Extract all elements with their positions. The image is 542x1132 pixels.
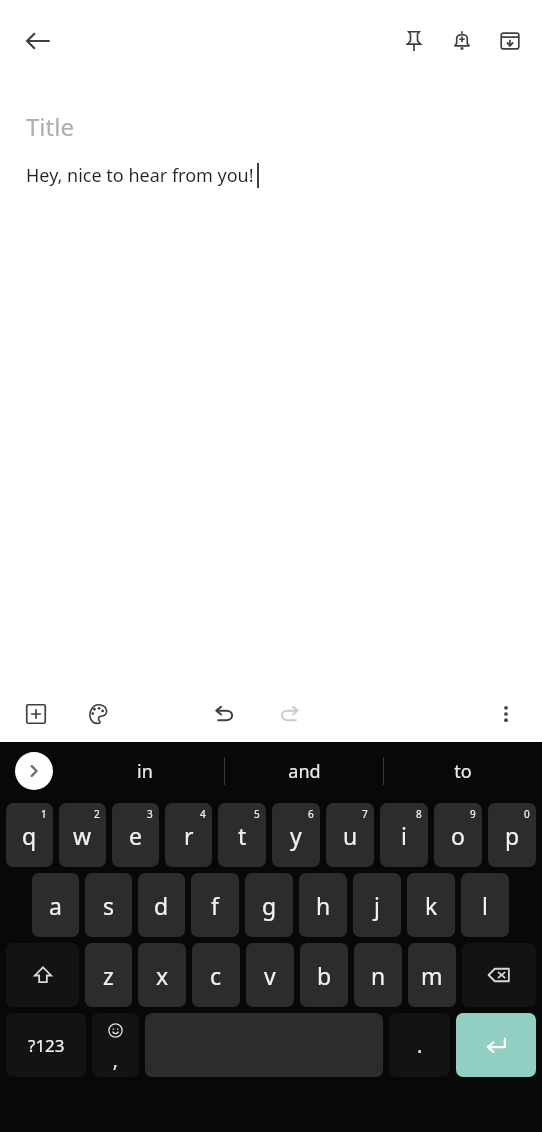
staticText: u [343, 820, 358, 851]
button[interactable]: Expand suggestions [15, 752, 53, 790]
button[interactable]: c [192, 943, 240, 1007]
staticText: 9 [470, 807, 476, 821]
button[interactable]: Period [389, 1013, 450, 1077]
staticText: y [290, 820, 302, 851]
button[interactable]: x [138, 943, 186, 1007]
button[interactable]: Add reminder [438, 17, 486, 65]
staticText: m [421, 960, 443, 991]
button[interactable]: w [59, 803, 106, 867]
staticText: 6 [308, 807, 314, 821]
staticText: in [137, 759, 153, 784]
staticText: c [210, 960, 222, 991]
button[interactable]: Back [12, 15, 64, 67]
button[interactable]: d [138, 873, 185, 937]
button[interactable]: Backspace [462, 943, 536, 1007]
staticText: 5 [254, 807, 260, 821]
staticText: t [238, 820, 247, 851]
button[interactable]: q [6, 803, 53, 867]
button[interactable]: n [354, 943, 402, 1007]
button[interactable]: g [245, 873, 293, 937]
staticText: 7 [362, 807, 368, 821]
staticText: . [417, 1032, 423, 1059]
staticText: r [184, 820, 194, 851]
staticText: s [103, 890, 115, 921]
staticText: 3 [147, 807, 153, 821]
button[interactable]: s [85, 873, 132, 937]
button[interactable]: o [434, 803, 482, 867]
button[interactable]: v [246, 943, 294, 1007]
staticText: x [156, 960, 169, 991]
button[interactable]: j [353, 873, 401, 937]
button[interactable]: Enter [456, 1013, 536, 1077]
staticText: ?123 [28, 1034, 65, 1057]
button[interactable]: y [272, 803, 320, 867]
staticText: w [73, 820, 92, 851]
staticText: e [129, 820, 142, 851]
button[interactable]: m [408, 943, 456, 1007]
button[interactable]: i [380, 803, 428, 867]
staticText: Hey, nice to hear from you! [26, 163, 254, 188]
button[interactable]: z [85, 943, 132, 1007]
staticText: to [454, 759, 472, 784]
button[interactable]: Pin [390, 17, 438, 65]
button[interactable]: b [300, 943, 348, 1007]
button[interactable]: to [384, 742, 542, 800]
button[interactable]: Change color [74, 690, 122, 738]
staticText: 2 [94, 807, 100, 821]
staticText: h [316, 890, 331, 921]
staticText: q [22, 820, 37, 851]
button[interactable]: ?123 [6, 1013, 86, 1077]
staticText: v [264, 960, 276, 991]
staticText: Title [26, 110, 74, 143]
staticText: ‚ [113, 1047, 118, 1073]
staticText: b [317, 960, 332, 991]
button[interactable]: l [461, 873, 509, 937]
button[interactable]: Undo [200, 690, 248, 738]
staticText: a [49, 890, 62, 921]
button[interactable]: e [112, 803, 159, 867]
staticText: and [288, 759, 321, 784]
staticText: f [211, 890, 219, 921]
button[interactable]: Emoji and comma [92, 1013, 139, 1077]
button[interactable]: Archive [486, 17, 534, 65]
button[interactable]: t [218, 803, 266, 867]
button[interactable]: Add item [12, 690, 60, 738]
staticText: k [425, 890, 438, 921]
button[interactable]: Shift [6, 943, 79, 1007]
button[interactable]: u [326, 803, 374, 867]
staticText: z [103, 960, 114, 991]
staticText: d [154, 890, 169, 921]
button[interactable]: in [66, 742, 224, 800]
button[interactable]: r [165, 803, 212, 867]
staticText: n [371, 960, 386, 991]
staticText: l [482, 890, 488, 921]
button[interactable]: and [225, 742, 383, 800]
staticText: i [401, 820, 407, 851]
button[interactable]: p [488, 803, 536, 867]
button[interactable]: k [407, 873, 455, 937]
staticText: j [374, 890, 380, 921]
staticText: g [262, 890, 277, 921]
button[interactable]: h [299, 873, 347, 937]
staticText: 1 [41, 807, 47, 821]
button[interactable]: Redo [266, 690, 314, 738]
staticText: 8 [416, 807, 422, 821]
button[interactable]: f [191, 873, 239, 937]
button[interactable]: a [32, 873, 79, 937]
staticText: p [505, 820, 520, 851]
staticText: o [451, 820, 465, 851]
staticText: 4 [200, 807, 206, 821]
staticText: 0 [524, 807, 530, 821]
button[interactable]: More options [482, 690, 530, 738]
